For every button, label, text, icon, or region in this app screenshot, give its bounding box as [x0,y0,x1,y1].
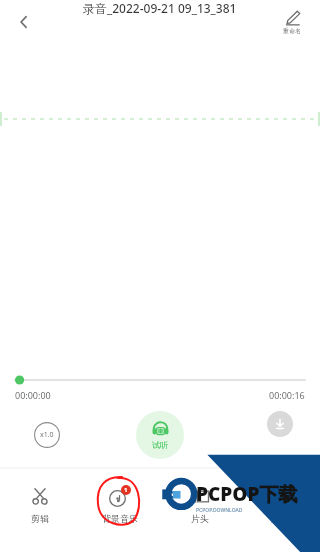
button[interactable]: 试听 [136,411,184,459]
staticText: 片头 [191,513,209,524]
button[interactable]: Download [267,411,293,437]
staticText: 00:00:00 [15,389,51,401]
button[interactable]: 片尾 [240,468,320,540]
staticText: PCPOP.DOWNLOAD [196,507,243,514]
staticText: 00:00:16 [269,389,305,401]
button[interactable]: 重命名 [272,10,312,35]
staticText: PCPOP下载 [196,481,298,507]
staticText: 片尾 [271,513,289,524]
button[interactable]: 剪辑 [0,468,80,540]
button[interactable]: 1 [80,468,160,540]
staticText: 背景音乐 [102,513,138,524]
staticText: x1.0 [40,430,54,440]
staticText: 录音_2022-09-21 09_13_381 [83,0,237,16]
staticText: 剪辑 [31,513,49,524]
staticText: 重命名 [283,27,301,35]
staticText: 试听 [152,440,168,450]
button[interactable]: x1.0 [34,422,60,448]
button[interactable]: 片头 [160,468,240,540]
staticText: 1 [124,486,128,494]
button[interactable]: Back [6,4,42,40]
